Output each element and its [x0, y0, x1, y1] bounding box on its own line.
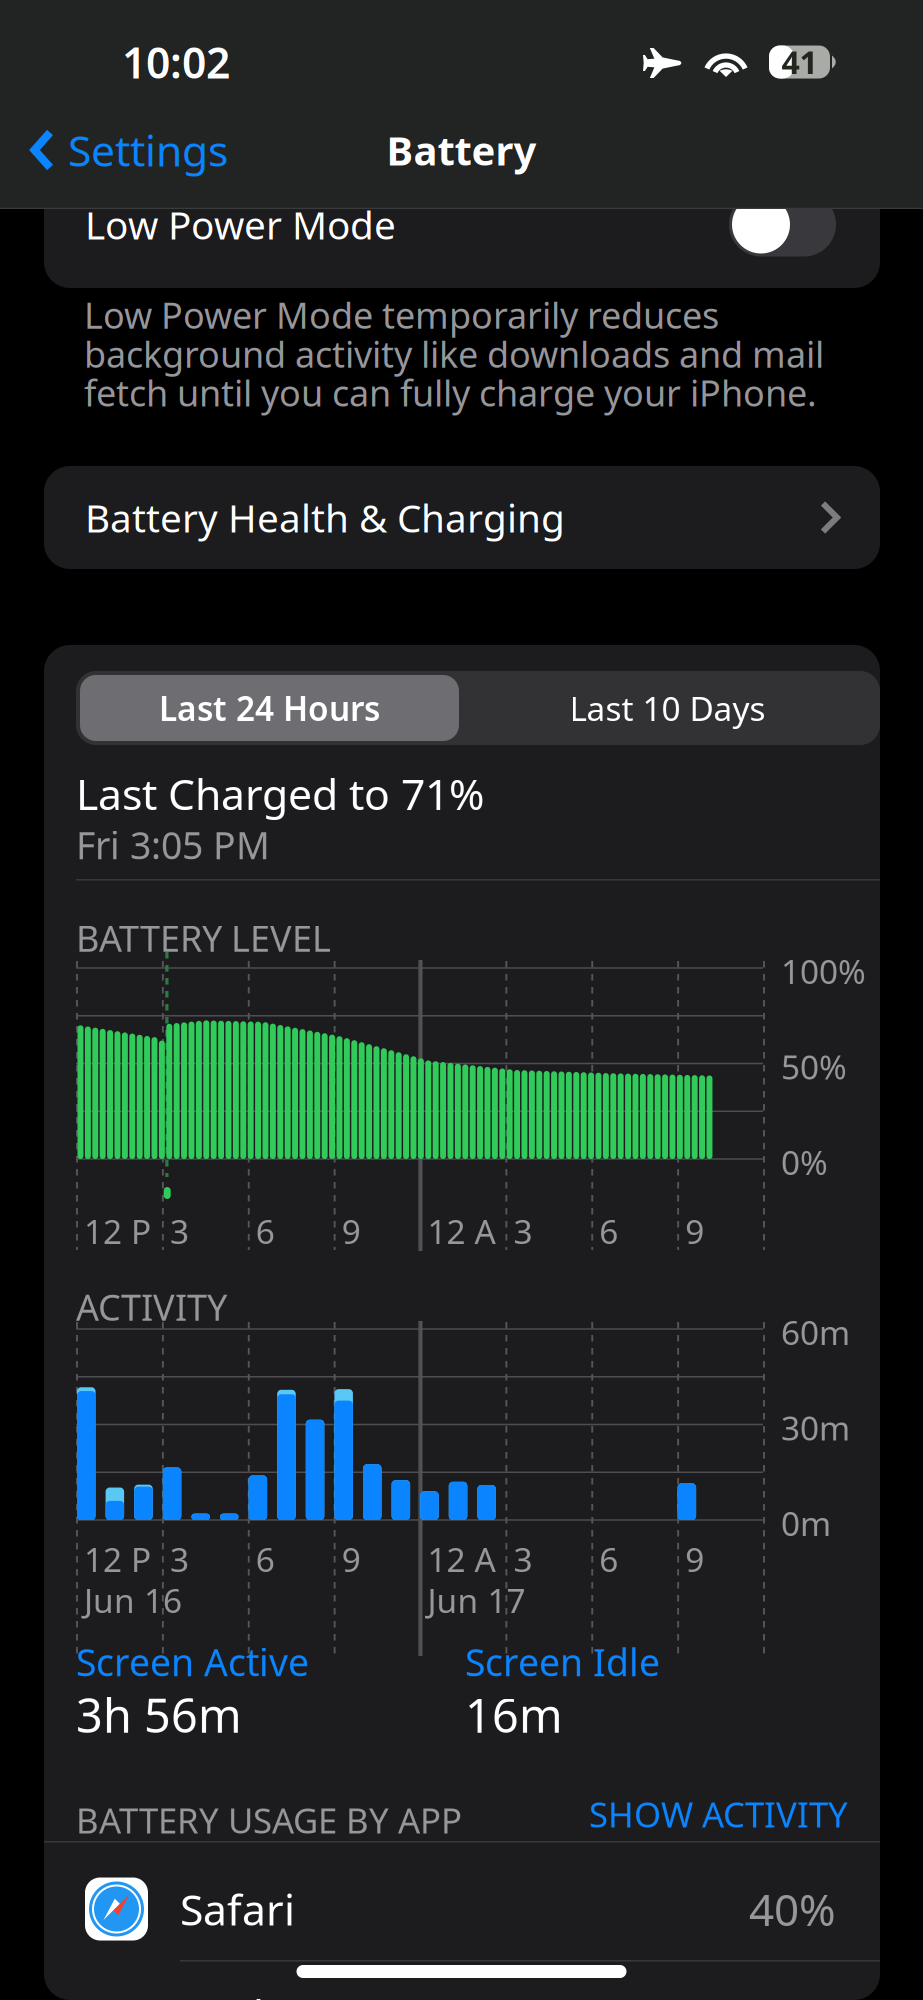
staticText: Last 10 Days — [569, 686, 765, 730]
staticText: Screen Active — [76, 1637, 309, 1687]
staticText: 40% — [749, 1880, 836, 1938]
staticText: 50% — [781, 1044, 847, 1089]
staticText: Fri 3:05 PM — [76, 820, 270, 870]
button[interactable]: Battery Health & Charging — [44, 466, 880, 569]
staticText: Safari — [180, 1881, 295, 1937]
staticText: 6 — [256, 1537, 275, 1581]
staticText: 9 — [342, 1537, 361, 1581]
staticText: Battery — [386, 123, 536, 176]
button[interactable]: Last 10 Days — [459, 675, 876, 741]
button[interactable]: Last 24 Hours — [80, 675, 459, 741]
staticText: 0% — [781, 1140, 828, 1184]
staticText: 41 — [781, 41, 817, 83]
staticText: Settings — [68, 122, 228, 178]
button[interactable]: Settings — [0, 110, 244, 190]
staticText: 6 — [599, 1537, 618, 1581]
staticText: ACTIVITY — [76, 1283, 227, 1331]
staticText: 10:02 — [122, 34, 230, 90]
staticText: 60m — [781, 1310, 850, 1354]
button[interactable]: Low Power Mode — [44, 161, 880, 288]
staticText: 3 — [170, 1209, 189, 1253]
staticText: Jun 16 — [84, 1578, 182, 1622]
staticText: 12 A — [427, 1209, 495, 1253]
staticText: 9 — [685, 1537, 704, 1581]
staticText: Low Power Mode — [85, 199, 396, 250]
staticText: 12 A — [427, 1537, 495, 1581]
staticText: 6 — [599, 1209, 618, 1253]
staticText: 16m — [465, 1684, 563, 1746]
staticText: 100% — [781, 949, 866, 993]
staticText: BATTERY USAGE BY APP — [76, 1797, 462, 1843]
staticText: Last 24 Hours — [159, 686, 380, 730]
staticText: Jun 17 — [427, 1578, 525, 1622]
staticText: Low Power Mode temporarily reduces backg… — [84, 291, 824, 416]
staticText: 3h 56m — [76, 1684, 242, 1746]
button[interactable]: SHOW ACTIVITY — [558, 1797, 848, 1831]
staticText: 6 — [256, 1209, 275, 1253]
staticText: 12 P — [84, 1209, 151, 1253]
staticText: Last Charged to 71% — [76, 765, 484, 822]
staticText: 30m — [781, 1405, 850, 1450]
staticText: Battery Health & Charging — [85, 492, 565, 543]
staticText: 3 — [513, 1209, 532, 1253]
button[interactable]: Safari — [44, 1853, 880, 1965]
staticText: 12 P — [84, 1537, 151, 1581]
staticText: 3 — [170, 1537, 189, 1581]
staticText: 9 — [685, 1209, 704, 1253]
staticText: 0m — [781, 1501, 831, 1545]
staticText: Screen Idle — [465, 1637, 660, 1687]
staticText: Tools — [180, 1986, 284, 2000]
staticText: 9 — [342, 1209, 361, 1253]
staticText: SHOW ACTIVITY — [589, 1791, 848, 1837]
staticText: BATTERY LEVEL — [76, 914, 331, 962]
staticText: 3 — [513, 1537, 532, 1581]
